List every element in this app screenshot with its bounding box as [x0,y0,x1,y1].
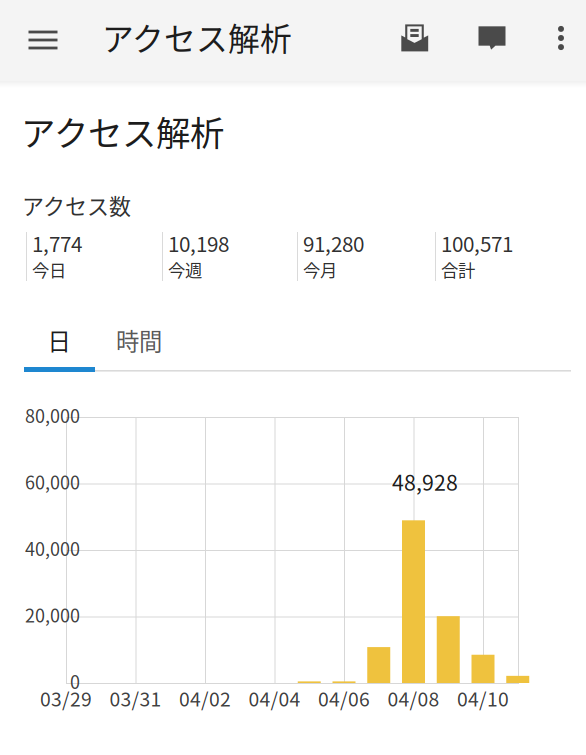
button[interactable]: Mail [389,12,441,64]
staticText: アクセス解析 [102,14,292,60]
button[interactable]: Comments [466,12,518,64]
staticText: 10,198 [168,228,229,258]
staticText: 04/04 [248,684,300,712]
staticText: 今月 [303,257,337,282]
staticText: アクセス解析 [21,106,224,156]
button[interactable]: Menu [15,12,71,68]
button[interactable]: More options [538,12,584,64]
staticText: 今日 [32,257,66,282]
staticText: 日 [47,323,70,357]
staticText: 60,000 [25,468,80,495]
staticText: 今週 [168,257,202,282]
staticText: 48,928 [392,466,458,497]
staticText: アクセス数 [22,189,131,221]
staticText: 100,571 [441,228,513,258]
button[interactable]: 時間 [97,319,181,361]
staticText: 1,774 [32,228,82,258]
staticText: 40,000 [25,535,80,561]
staticText: 80,000 [25,402,80,428]
staticText: 合計 [441,257,475,282]
staticText: 04/02 [179,684,231,712]
staticText: 時間 [116,323,162,357]
staticText: 04/06 [318,684,370,712]
staticText: 03/31 [109,684,161,712]
staticText: 91,280 [303,228,364,258]
button[interactable]: 日 [23,319,95,361]
staticText: 03/29 [40,684,92,712]
staticText: 20,000 [25,601,80,628]
staticText: 04/10 [457,684,509,712]
staticText: 0 [70,668,80,694]
staticText: 04/08 [387,684,439,712]
